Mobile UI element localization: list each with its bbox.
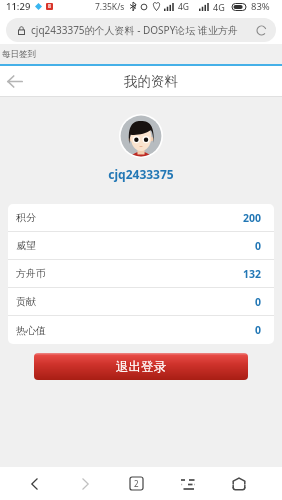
button[interactable]: 积分	[8, 204, 274, 231]
staticText: 4G	[178, 1, 190, 13]
button[interactable]: 热心值	[8, 316, 274, 344]
button[interactable]: Tabs	[111, 467, 162, 500]
staticText: cjq2433375	[0, 166, 282, 182]
button[interactable]: cjq2433375的个人资料 - DOSPY论坛 谁业方舟	[6, 18, 276, 42]
button[interactable]: Menu	[162, 467, 213, 500]
button[interactable]: 每日签到	[0, 44, 282, 64]
staticText: 0	[255, 323, 262, 337]
staticText: 83%	[251, 0, 270, 13]
staticText: 热心值	[16, 324, 46, 337]
button[interactable]: 退出登录	[34, 353, 248, 380]
staticText: 我的资料	[124, 73, 178, 90]
staticText: 4G	[213, 1, 225, 13]
button[interactable]: Back	[0, 67, 29, 96]
staticText: 威望	[16, 239, 36, 252]
button[interactable]: Home	[213, 467, 264, 500]
staticText: 每日签到	[2, 49, 36, 60]
staticText: 0	[255, 239, 262, 253]
staticText: 退出登录	[116, 359, 166, 375]
staticText: cjq2433375的个人资料 - DOSPY论坛 谁业方舟	[31, 23, 238, 37]
staticText: 200	[243, 211, 262, 225]
staticText: 132	[243, 267, 262, 281]
staticText: 11:29	[6, 0, 31, 13]
button[interactable]: Forward	[60, 467, 111, 500]
staticText: 方舟币	[16, 267, 46, 280]
staticText: 积分	[16, 211, 36, 224]
staticText: 7.35K/s	[95, 1, 125, 13]
button[interactable]: 贡献	[8, 288, 274, 315]
staticText: 0	[255, 295, 262, 309]
button[interactable]: Back	[9, 467, 60, 500]
staticText: 8	[48, 3, 51, 10]
button[interactable]: 方舟币	[8, 260, 274, 287]
staticText: 2	[134, 478, 139, 489]
staticText: 贡献	[16, 295, 36, 308]
button[interactable]: 威望	[8, 232, 274, 259]
button[interactable]: Avatar	[119, 114, 163, 158]
